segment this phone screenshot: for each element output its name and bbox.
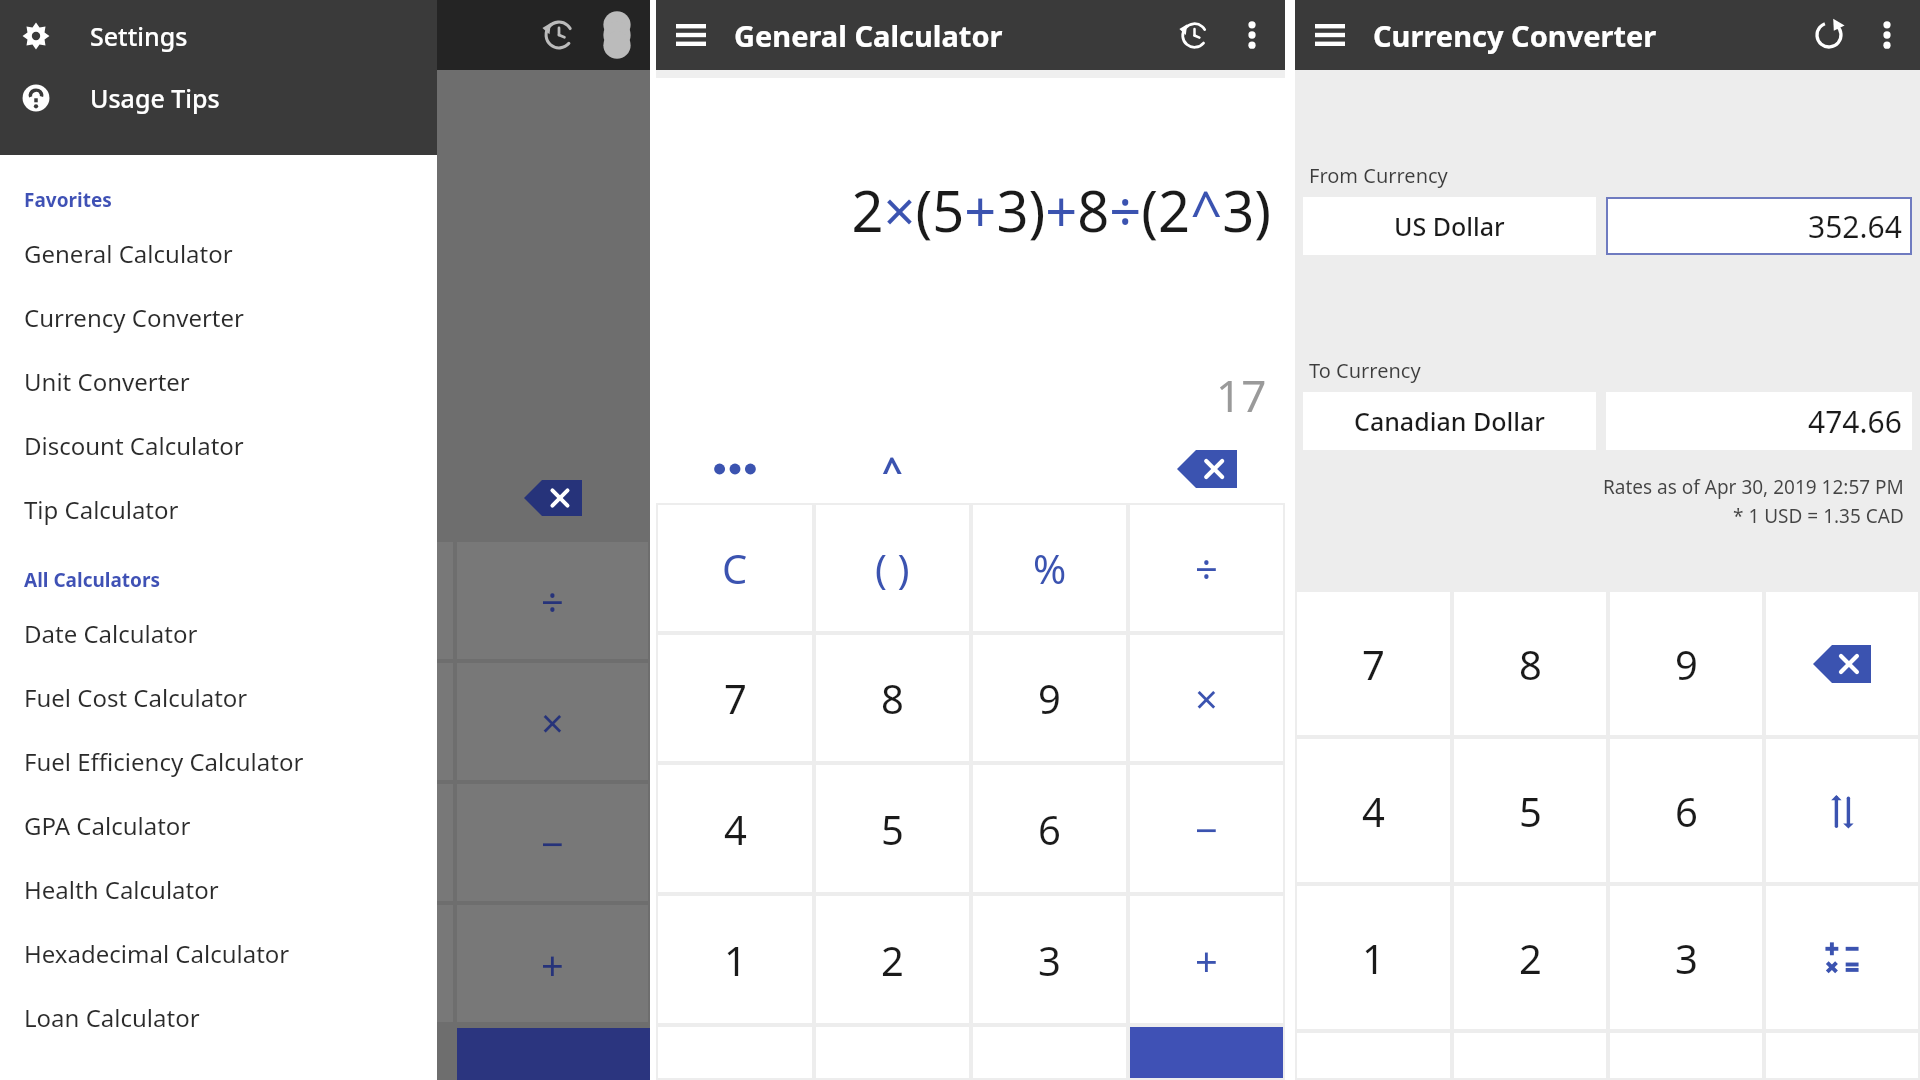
button[interactable]: Refresh rates <box>1810 16 1848 54</box>
button[interactable]: C <box>658 505 812 631</box>
staticText: 9 <box>1675 637 1698 691</box>
staticText: Settings <box>90 19 188 53</box>
staticText: 3 <box>1038 933 1061 987</box>
staticText: 7 <box>1362 637 1385 691</box>
button[interactable]: Unit Converter <box>0 349 437 413</box>
button[interactable]: + <box>1130 896 1283 1023</box>
staticText: 6 <box>1038 802 1061 856</box>
button[interactable]: 352.64 <box>1606 197 1912 255</box>
button[interactable]: 2 <box>1454 886 1606 1029</box>
staticText: GPA Calculator <box>24 809 191 842</box>
button[interactable]: 3 <box>1610 886 1762 1029</box>
button[interactable]: Discount Calculator <box>0 413 437 477</box>
button[interactable]: Usage Tips <box>0 76 437 120</box>
staticText: 5 <box>1519 784 1542 838</box>
button[interactable]: General Calculator <box>0 221 437 285</box>
button[interactable]: Date Calculator <box>0 601 437 665</box>
button[interactable]: Loan Calculator <box>0 985 437 1049</box>
button[interactable]: 474.66 <box>1606 392 1912 450</box>
staticText: ÷ <box>541 574 564 628</box>
button[interactable]: Canadian Dollar <box>1303 392 1596 450</box>
button[interactable]: 6 <box>1610 739 1762 882</box>
button[interactable]: 9 <box>973 635 1126 761</box>
staticText: 3 <box>1675 931 1698 985</box>
button[interactable]: 4 <box>1297 739 1450 882</box>
button[interactable]: More options <box>1235 18 1269 52</box>
button[interactable]: 5 <box>816 765 969 892</box>
staticText: * 1 USD = 1.35 CAD <box>1733 503 1904 529</box>
button[interactable]: 8 <box>1454 592 1606 735</box>
button[interactable]: Tip Calculator <box>0 477 437 541</box>
button[interactable]: − <box>1130 765 1283 892</box>
staticText: + <box>541 937 564 991</box>
button[interactable]: 9 <box>1610 592 1762 735</box>
staticText: All Calculators <box>24 567 161 593</box>
button[interactable]: US Dollar <box>1303 197 1596 255</box>
button[interactable]: ( ) <box>816 505 969 631</box>
staticText: Unit Converter <box>24 365 190 398</box>
button[interactable]: 6 <box>973 765 1126 892</box>
button[interactable]: Open navigation drawer <box>672 16 710 54</box>
staticText: 4 <box>1362 784 1385 838</box>
button[interactable]: Health Calculator <box>0 857 437 921</box>
staticText: 8 <box>881 671 904 725</box>
button[interactable]: 8 <box>816 635 969 761</box>
staticText: × <box>541 695 564 749</box>
staticText: Tip Calculator <box>24 493 179 526</box>
button[interactable]: 3 <box>973 896 1126 1023</box>
button[interactable]: Open navigation drawer <box>1311 16 1349 54</box>
staticText: 2×(5+3)+8÷(2^3) <box>851 172 1271 248</box>
button[interactable]: Settings <box>0 14 437 58</box>
staticText: 2 <box>881 933 904 987</box>
staticText: From Currency <box>1309 162 1448 189</box>
staticText: × <box>1195 671 1218 725</box>
button[interactable]: 7 <box>1297 592 1450 735</box>
button[interactable]: % <box>973 505 1126 631</box>
button[interactable]: Operators <box>1766 886 1918 1029</box>
staticText: 352.64 <box>1808 206 1902 247</box>
button[interactable] <box>1128 435 1285 503</box>
button[interactable]: More options <box>1870 18 1904 52</box>
staticText: Discount Calculator <box>24 429 244 462</box>
button[interactable]: More options <box>602 20 632 50</box>
button[interactable]: 7 <box>658 635 812 761</box>
button[interactable]: History <box>1175 16 1213 54</box>
button[interactable]: 1 <box>1297 886 1450 1029</box>
staticText: 474.66 <box>1808 401 1902 442</box>
staticText: 1 <box>724 933 747 987</box>
button[interactable]: Backspace <box>1766 592 1918 735</box>
staticText: 7 <box>724 671 747 725</box>
staticText: US Dollar <box>1394 209 1505 243</box>
button[interactable]: 4 <box>658 765 812 892</box>
button[interactable]: × <box>1130 635 1283 761</box>
staticText: 4 <box>724 802 747 856</box>
staticText: 5 <box>881 802 904 856</box>
button[interactable]: Fuel Efficiency Calculator <box>0 729 437 793</box>
button[interactable]: Currency Converter <box>0 285 437 349</box>
button[interactable]: ÷ <box>1130 505 1283 631</box>
staticText: − <box>1195 802 1218 856</box>
button[interactable]: History <box>542 18 576 52</box>
button[interactable]: 5 <box>1454 739 1606 882</box>
staticText: Currency Converter <box>24 301 244 334</box>
staticText: Fuel Cost Calculator <box>24 681 248 714</box>
button[interactable] <box>656 435 814 503</box>
button[interactable]: 2 <box>816 896 969 1023</box>
staticText: Health Calculator <box>24 873 219 906</box>
button[interactable]: ^ <box>814 435 971 503</box>
staticText: General Calculator <box>734 16 1003 55</box>
button[interactable]: GPA Calculator <box>0 793 437 857</box>
button[interactable]: Fuel Cost Calculator <box>0 665 437 729</box>
button[interactable]: 1 <box>658 896 812 1023</box>
button[interactable]: Swap currencies <box>1766 739 1918 882</box>
button[interactable]: Hexadecimal Calculator <box>0 921 437 985</box>
